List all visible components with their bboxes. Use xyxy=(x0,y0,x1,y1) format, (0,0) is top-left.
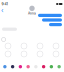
button[interactable]: App xyxy=(32,65,40,68)
staticText: 9:41 xyxy=(2,2,8,6)
button[interactable]: App xyxy=(47,65,55,68)
button[interactable]: App xyxy=(16,65,24,68)
button[interactable]: App xyxy=(55,65,63,68)
button[interactable]: App xyxy=(24,65,32,68)
staticText: Anna xyxy=(28,11,36,15)
button[interactable]: App xyxy=(9,65,17,68)
button[interactable]: Add xyxy=(2,37,6,41)
button[interactable]: App xyxy=(40,65,48,68)
button[interactable]: Back xyxy=(0,6,5,14)
staticText: ‹ xyxy=(1,6,4,15)
button[interactable]: App xyxy=(1,65,9,68)
